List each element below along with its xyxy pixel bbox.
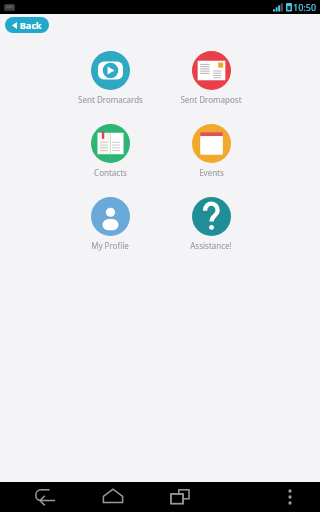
staticText: Back [20, 19, 42, 31]
staticText: Sent Dromapost [180, 94, 242, 105]
button[interactable]: Recent apps [165, 482, 195, 512]
button[interactable]: Assistance! [175, 197, 247, 251]
button[interactable]: Events [175, 124, 247, 178]
staticText: 10:50 [293, 1, 317, 13]
button[interactable]: Sent Dromacards [74, 51, 146, 105]
button[interactable]: Back [5, 17, 49, 33]
button[interactable]: Sent Dromapost [175, 51, 247, 105]
button[interactable]: Contacts [74, 124, 146, 178]
button[interactable]: More options [275, 482, 305, 512]
button[interactable]: Home [98, 482, 128, 512]
staticText: Events [199, 167, 224, 178]
button[interactable]: My Profile [74, 197, 146, 251]
staticText: Sent Dromacards [78, 94, 143, 105]
button[interactable]: Back [31, 482, 61, 512]
staticText: Assistance! [190, 240, 232, 251]
staticText: My Profile [91, 240, 129, 251]
staticText: Contacts [94, 167, 127, 178]
